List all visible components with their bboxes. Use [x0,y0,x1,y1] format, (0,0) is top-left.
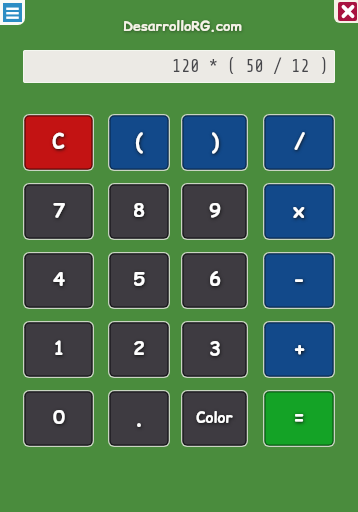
staticText: . [134,402,144,433]
button[interactable]: Close [334,0,358,23]
staticText: 2 [133,335,145,362]
staticText: - [292,264,306,295]
button[interactable]: 3 [181,321,248,378]
staticText: x [293,197,305,225]
staticText: = [293,404,305,431]
button[interactable]: 8 [108,183,170,240]
button[interactable]: C [23,114,94,171]
button[interactable]: ) [181,114,248,171]
button[interactable]: x [263,183,335,240]
staticText: Color [196,407,233,428]
staticText: ( [135,127,143,156]
button[interactable]: + [263,321,335,378]
staticText: 6 [209,266,221,293]
button[interactable]: 7 [23,183,94,240]
staticText: C [52,128,65,156]
staticText: 3 [209,335,221,362]
button[interactable]: 2 [108,321,170,378]
button[interactable]: 9 [181,183,248,240]
staticText: 7 [53,197,65,224]
staticText: 9 [209,197,221,224]
button[interactable]: - [263,252,335,309]
staticText: / [294,127,305,156]
button[interactable]: Color [181,390,248,447]
staticText: 1 [53,335,65,362]
button[interactable]: 1 [23,321,94,378]
staticText: ) [211,127,219,156]
button[interactable]: 0 [23,390,94,447]
button[interactable]: Menu [0,0,25,25]
button[interactable]: ( [108,114,170,171]
staticText: 5 [133,266,145,293]
staticText: 120 * ( 50 / 12 ) [172,57,329,76]
staticText: 4 [53,266,65,293]
staticText: 8 [133,197,145,224]
staticText: DesarrolloRG.com [123,16,242,36]
staticText: 0 [53,404,65,431]
button[interactable]: 5 [108,252,170,309]
button[interactable]: = [263,390,335,447]
button[interactable]: 4 [23,252,94,309]
button[interactable]: / [263,114,335,171]
button[interactable]: 6 [181,252,248,309]
button[interactable]: . [108,390,170,447]
staticText: + [293,334,306,363]
